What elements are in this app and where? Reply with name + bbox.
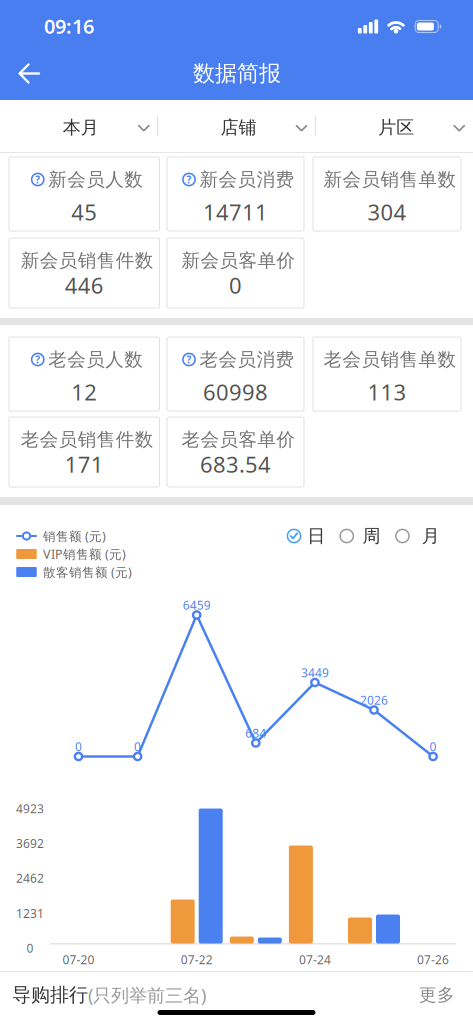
staticText: 45 xyxy=(71,197,97,227)
staticText: 2462 xyxy=(16,870,44,886)
staticText: 14711 xyxy=(203,197,268,227)
button[interactable]: 日 xyxy=(287,525,325,547)
staticText: 07-22 xyxy=(181,951,213,967)
staticText: 片区 xyxy=(378,116,414,138)
staticText: 07-26 xyxy=(417,951,449,967)
button[interactable] xyxy=(18,63,40,83)
staticText: 07-24 xyxy=(299,951,331,967)
staticText: 446 xyxy=(65,271,104,300)
staticText: 684 xyxy=(245,725,266,741)
staticText: 09:16 xyxy=(44,13,94,39)
staticText: ? xyxy=(35,353,40,366)
staticText: 日 xyxy=(307,525,325,547)
staticText: 新会员销售件数 xyxy=(21,249,154,272)
staticText: 店铺 xyxy=(220,116,256,138)
staticText: 6459 xyxy=(183,597,211,613)
staticText: ? xyxy=(186,353,191,366)
staticText: 老会员客单价 xyxy=(181,428,295,451)
staticText: (只列举前三名) xyxy=(88,983,206,1007)
staticText: 0 xyxy=(229,271,242,300)
staticText: 更多 xyxy=(419,984,455,1006)
staticText: 0 xyxy=(26,940,33,956)
staticText: 数据简报 xyxy=(193,60,281,87)
staticText: 本月 xyxy=(63,116,99,138)
staticText: 散客销售额 (元) xyxy=(43,564,132,580)
staticText: 0 xyxy=(134,738,141,754)
staticText: 60998 xyxy=(203,377,268,407)
staticText: ? xyxy=(186,173,191,186)
button[interactable]: ? xyxy=(182,353,195,366)
staticText: ? xyxy=(35,173,40,186)
staticText: 新会员客单价 xyxy=(181,249,295,272)
staticText: 老会员销售件数 xyxy=(21,428,154,451)
staticText: 老会员人数 xyxy=(48,348,143,371)
staticText: 304 xyxy=(367,197,406,227)
button[interactable]: ? xyxy=(182,173,195,186)
staticText: 3692 xyxy=(16,835,44,851)
staticText: 新会员消费 xyxy=(199,168,294,191)
button[interactable]: 店铺 xyxy=(168,111,308,141)
button[interactable]: 月 xyxy=(395,525,440,547)
button[interactable]: ? xyxy=(31,353,44,366)
staticText: VIP销售额 (元) xyxy=(43,546,126,562)
button[interactable]: 更多 xyxy=(419,984,473,1006)
staticText: 683.54 xyxy=(200,450,271,479)
staticText: 月 xyxy=(422,525,440,547)
button[interactable]: ? xyxy=(31,173,44,186)
staticText: 新会员人数 xyxy=(48,168,143,191)
staticText: 0 xyxy=(430,738,437,754)
staticText: 0 xyxy=(75,738,82,754)
staticText: 销售额 (元) xyxy=(43,528,106,544)
staticText: 老会员销售单数 xyxy=(323,348,456,371)
staticText: 12 xyxy=(71,377,97,407)
staticText: 4923 xyxy=(16,800,44,816)
staticText: 老会员消费 xyxy=(199,348,294,371)
staticText: 新会员销售单数 xyxy=(323,168,456,191)
staticText: 113 xyxy=(367,377,406,407)
staticText: 周 xyxy=(362,525,380,547)
staticText: 2026 xyxy=(360,692,388,708)
staticText: 导购排行 xyxy=(12,983,88,1007)
button[interactable]: 周 xyxy=(339,525,380,547)
button[interactable]: 片区 xyxy=(326,111,466,141)
staticText: 171 xyxy=(65,450,104,479)
staticText: 07-20 xyxy=(62,951,94,967)
staticText: 1231 xyxy=(16,905,44,921)
button[interactable]: 本月 xyxy=(11,111,151,141)
staticText: 3449 xyxy=(301,664,329,680)
